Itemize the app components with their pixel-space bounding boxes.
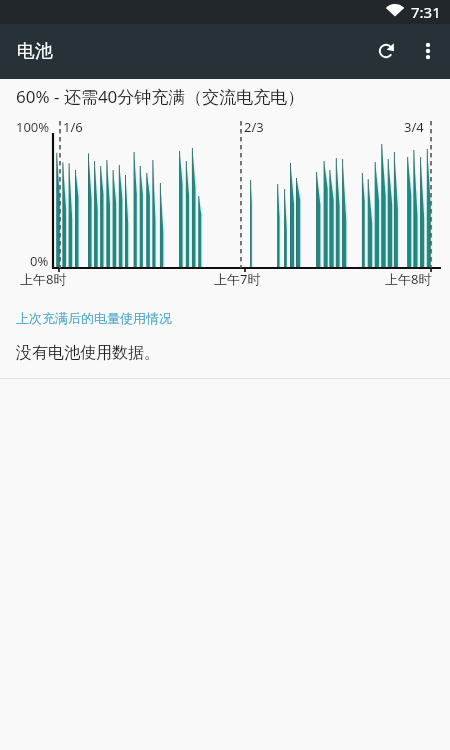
staticText: 1/6 bbox=[63, 118, 83, 136]
staticText: 60% - 还需40分钟充满（交流电充电） bbox=[16, 85, 305, 108]
staticText: 上午8时 bbox=[385, 270, 432, 288]
staticText: 7:31 bbox=[411, 2, 441, 22]
staticText: 没有电池使用数据。 bbox=[16, 343, 160, 363]
button[interactable]: Refresh bbox=[362, 27, 410, 75]
staticText: 电池 bbox=[17, 40, 53, 63]
staticText: 3/4 bbox=[404, 118, 424, 136]
staticText: 0% bbox=[30, 252, 49, 270]
button[interactable]: More options bbox=[404, 27, 450, 75]
staticText: 2/3 bbox=[244, 118, 264, 136]
staticText: 上午7时 bbox=[214, 270, 261, 288]
staticText: 上次充满后的电量使用情况 bbox=[16, 310, 172, 326]
staticText: 100% bbox=[16, 118, 50, 136]
staticText: 上午8时 bbox=[20, 270, 67, 288]
